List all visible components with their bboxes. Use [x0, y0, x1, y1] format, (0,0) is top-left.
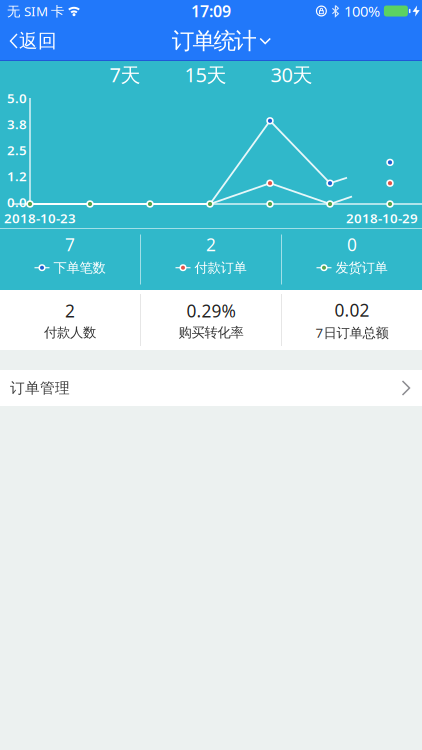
staticText: 2018-10-29 — [346, 209, 418, 227]
staticText: 购买转化率 — [178, 324, 243, 341]
button[interactable]: 7天 — [109, 61, 140, 88]
staticText: 5.0 — [7, 89, 27, 107]
staticText: 0.02 — [334, 299, 369, 322]
staticText: 1.2 — [7, 167, 27, 185]
staticText: 付款订单 — [194, 259, 246, 276]
staticText: 下单笔数 — [53, 259, 105, 276]
staticText: 返回 — [19, 29, 57, 52]
staticText: 17:09 — [191, 0, 231, 22]
button[interactable]: 30天 — [270, 61, 312, 88]
staticText: 100% — [344, 1, 380, 21]
staticText: 3.8 — [7, 115, 27, 133]
staticText: 0.0 — [7, 193, 27, 211]
staticText: 订单统计 — [172, 27, 257, 55]
staticText: 15天 — [184, 61, 226, 88]
staticText: 发货订单 — [335, 259, 387, 276]
button[interactable]: 订单统计 — [162, 27, 260, 55]
button[interactable]: 订单管理 — [0, 370, 422, 406]
staticText: 2 — [206, 233, 216, 256]
staticText: 7天 — [109, 61, 140, 88]
button[interactable]: 返回 — [0, 29, 57, 52]
staticText: 2.5 — [7, 141, 27, 159]
staticText: 付款人数 — [44, 324, 96, 341]
staticText: 2018-10-23 — [4, 209, 76, 227]
staticText: 0 — [347, 233, 357, 256]
staticText: 订单管理 — [10, 379, 70, 397]
staticText: 2 — [65, 299, 75, 322]
staticText: 7日订单总额 — [315, 324, 388, 341]
staticText: 30天 — [270, 61, 312, 88]
staticText: 无 SIM 卡 — [7, 2, 64, 20]
staticText: 7 — [65, 233, 75, 256]
button[interactable]: 15天 — [184, 61, 226, 88]
staticText: 0.29% — [186, 299, 235, 322]
